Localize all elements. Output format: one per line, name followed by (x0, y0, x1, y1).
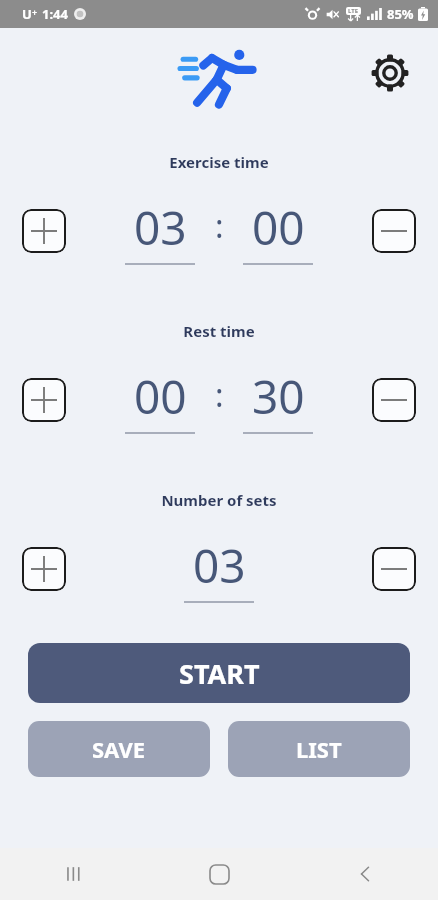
staticText: + (32, 6, 38, 18)
staticText: : (215, 373, 224, 417)
button[interactable]: Increase (22, 209, 66, 253)
staticText: U (22, 5, 32, 23)
button[interactable]: Decrease (372, 209, 416, 253)
staticText: START (179, 655, 260, 692)
button[interactable]: SAVE (28, 721, 210, 777)
staticText: Number of sets (0, 490, 438, 510)
button[interactable]: Increase (22, 547, 66, 591)
staticText: 1:44 (42, 5, 68, 23)
staticText: 03 (134, 196, 187, 259)
staticText: 00 (134, 365, 187, 428)
button[interactable]: LIST (228, 721, 410, 777)
button[interactable]: Back (292, 848, 438, 900)
button[interactable]: Settings (366, 49, 414, 97)
button[interactable]: Increase (22, 378, 66, 422)
staticText: LIST (296, 734, 342, 764)
staticText: : (215, 204, 224, 248)
button[interactable]: Home (146, 848, 292, 900)
staticText: 00 (252, 196, 305, 259)
staticText: 85% (387, 5, 414, 23)
staticText: Exercise time (0, 152, 438, 172)
button[interactable]: Decrease (372, 378, 416, 422)
staticText: 03 (193, 534, 246, 597)
staticText: 30 (252, 365, 305, 428)
button[interactable]: START (28, 643, 410, 703)
staticText: SAVE (92, 734, 146, 764)
button[interactable]: Decrease (372, 547, 416, 591)
staticText: LTE (348, 7, 359, 15)
staticText: Rest time (0, 321, 438, 341)
button[interactable]: Recent apps (0, 848, 146, 900)
